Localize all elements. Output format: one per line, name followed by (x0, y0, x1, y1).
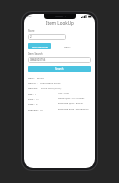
staticText: Item Ds : (28, 86, 39, 89)
button[interactable]: Scan Barcode (28, 43, 51, 49)
staticText: Scan Barcode (32, 45, 48, 48)
staticText: Extended Qnty : RMCIN (58, 102, 91, 105)
staticText: DANE SIGN(3.PLT) (41, 86, 62, 89)
staticText: 0884003156 (30, 58, 46, 62)
staticText: 73 (40, 108, 43, 111)
staticText: Thermaport ecCbc (40, 81, 61, 84)
button[interactable]: 0884003156 (28, 57, 91, 63)
staticText: Item Tl : (28, 81, 38, 84)
staticText: Item : (64, 45, 71, 48)
staticText: Pack : (28, 97, 35, 100)
staticText: Size : (28, 92, 34, 95)
staticText: 9 (36, 102, 38, 105)
staticText: Store (28, 29, 35, 33)
staticText: Item Search (28, 52, 43, 56)
staticText: 2 (30, 35, 32, 39)
staticText: 1 (35, 92, 37, 95)
staticText: Extended price : RMVR2DMA (58, 108, 91, 111)
button[interactable]: 2 (28, 34, 66, 40)
staticText: Item : (28, 76, 35, 79)
staticText: Search (55, 67, 64, 71)
staticText: 88156 (37, 76, 44, 79)
staticText: 9:41 (27, 15, 32, 18)
staticText: Case : (28, 102, 35, 105)
staticText: 17 (36, 97, 39, 100)
staticText: Item LookUp (46, 20, 74, 26)
staticText: UVC : 0.00 (58, 92, 91, 95)
button[interactable]: Search (28, 66, 91, 72)
staticText: Single Qnty : 01/17/RSET (58, 97, 91, 100)
staticText: SubCase : (28, 108, 39, 111)
